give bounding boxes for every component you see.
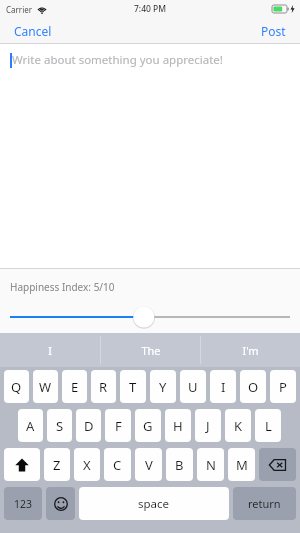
staticText: Carrier: [6, 4, 33, 15]
button[interactable]: I: [210, 370, 236, 403]
staticText: V: [145, 456, 153, 474]
staticText: Write about something you appreciate!: [12, 52, 223, 68]
button[interactable]: C: [104, 448, 131, 481]
button[interactable]: U: [180, 370, 206, 403]
button[interactable]: K: [225, 409, 251, 442]
staticText: return: [248, 496, 281, 511]
staticText: A: [26, 417, 35, 435]
staticText: Q: [11, 378, 22, 396]
staticText: W: [39, 378, 52, 396]
button[interactable]: S: [47, 409, 72, 442]
staticText: Z: [53, 456, 61, 474]
staticText: Y: [159, 378, 167, 396]
staticText: D: [84, 417, 94, 435]
staticText: T: [129, 378, 137, 396]
staticText: J: [206, 417, 210, 435]
staticText: F: [115, 417, 122, 435]
staticText: K: [234, 417, 243, 435]
button[interactable]: Q: [4, 370, 29, 403]
button[interactable]: P: [270, 370, 296, 403]
button[interactable]: O: [240, 370, 266, 403]
staticText: I: [221, 378, 226, 396]
button[interactable]: Cancel: [0, 19, 66, 43]
staticText: S: [56, 417, 64, 435]
button[interactable]: M: [228, 448, 255, 481]
staticText: L: [265, 417, 272, 435]
staticText: 123: [14, 497, 33, 511]
button[interactable]: W: [33, 370, 58, 403]
button[interactable]: Emoji: [46, 487, 75, 520]
button[interactable]: N: [197, 448, 224, 481]
button[interactable]: A: [18, 409, 43, 442]
button[interactable]: Shift: [4, 448, 40, 481]
button[interactable]: T: [120, 370, 146, 403]
staticText: G: [143, 417, 153, 435]
button[interactable]: I'm: [201, 333, 300, 367]
staticText: 7:40 PM: [134, 3, 167, 15]
staticText: R: [99, 378, 108, 396]
staticText: N: [206, 456, 216, 474]
staticText: P: [279, 378, 287, 396]
staticText: O: [248, 378, 259, 396]
button[interactable]: R: [91, 370, 116, 403]
button[interactable]: L: [255, 409, 281, 442]
staticText: B: [175, 456, 184, 474]
staticText: C: [113, 456, 122, 474]
button[interactable]: The: [101, 333, 200, 367]
staticText: The: [141, 343, 161, 358]
button[interactable]: Y: [150, 370, 176, 403]
button[interactable]: D: [76, 409, 101, 442]
staticText: E: [71, 378, 79, 396]
button[interactable]: J: [195, 409, 221, 442]
button[interactable]: [0, 305, 300, 329]
staticText: Happiness Index: 5/10: [10, 280, 115, 294]
button[interactable]: Z: [44, 448, 70, 481]
button[interactable]: X: [74, 448, 100, 481]
staticText: I: [48, 343, 52, 358]
button[interactable]: Post: [247, 19, 300, 43]
staticText: U: [188, 378, 198, 396]
button[interactable]: V: [135, 448, 162, 481]
button[interactable]: space: [79, 487, 229, 520]
button[interactable]: G: [135, 409, 161, 442]
staticText: M: [236, 456, 248, 474]
button[interactable]: F: [105, 409, 131, 442]
button[interactable]: H: [165, 409, 191, 442]
button[interactable]: return: [233, 487, 296, 520]
staticText: I'm: [242, 343, 259, 358]
staticText: H: [173, 417, 183, 435]
staticText: Cancel: [14, 23, 52, 39]
button[interactable]: Backspace: [259, 448, 296, 481]
staticText: X: [83, 456, 91, 474]
button[interactable]: I: [0, 333, 100, 367]
button[interactable]: B: [166, 448, 193, 481]
staticText: Post: [261, 23, 286, 39]
button[interactable]: E: [62, 370, 87, 403]
button[interactable]: 123: [4, 487, 42, 520]
staticText: space: [138, 496, 170, 512]
